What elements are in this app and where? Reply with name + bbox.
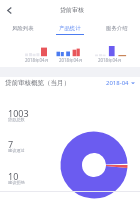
button[interactable]: 1003 [8,107,40,125]
button[interactable]: 风险列表 [0,25,46,37]
staticText: 10 [8,170,19,182]
staticText: 1003 [8,107,29,119]
staticText: 2018年04月 [98,57,122,63]
button[interactable]: 7 [8,138,40,156]
staticText: 产品统计 [59,25,81,32]
button[interactable]: 产品统计 [46,25,93,37]
button[interactable]: 2018年04月 [50,57,91,63]
staticText: 贷前审核概览（当月） [5,79,70,87]
button[interactable]: 2018年04月 [16,57,57,63]
button[interactable]: 2018年04月 [89,57,130,63]
button[interactable]: Back [1,2,17,18]
staticText: 2018年04月 [59,57,83,63]
staticText: 风险列表 [12,25,34,32]
staticText: 建议通过 [8,148,25,153]
staticText: 7 [8,138,14,150]
staticText: 贷款总数 [8,117,25,122]
staticText: 2018年04月 [25,57,49,63]
staticText: 贷前审核 [60,6,84,14]
button[interactable]: 2018-04 [106,79,135,87]
staticText: 建议拒绝 [8,180,25,185]
staticText: 服务介绍 [106,25,128,32]
button[interactable]: 10 [8,170,40,188]
staticText: 2018-04 [106,79,129,87]
button[interactable]: 服务介绍 [93,25,140,37]
